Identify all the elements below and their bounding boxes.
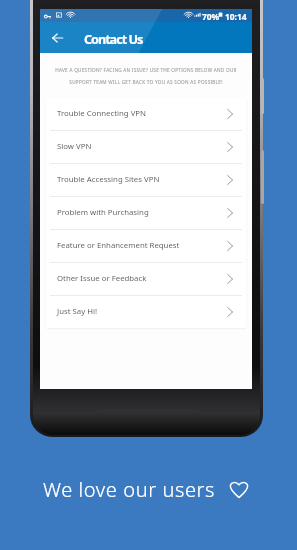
button[interactable]: Slow VPN bbox=[46, 131, 246, 163]
staticText: Contact Us bbox=[84, 31, 143, 48]
button[interactable]: Back bbox=[46, 26, 69, 49]
staticText: 10:14 bbox=[225, 11, 247, 22]
staticText: 70% bbox=[202, 11, 220, 22]
staticText: Trouble Accessing Sites VPN bbox=[57, 174, 160, 185]
button[interactable]: Feature or Enhancement Request bbox=[46, 230, 246, 262]
button[interactable]: Just Say Hi! bbox=[46, 296, 246, 328]
staticText: Just Say Hi! bbox=[57, 306, 98, 317]
button[interactable]: Trouble Accessing Sites VPN bbox=[46, 164, 246, 196]
button[interactable]: Problem with Purchasing bbox=[46, 197, 246, 229]
staticText: HAVE A QUESTION? FACING AN ISSUE? USE TH… bbox=[40, 67, 252, 86]
button[interactable]: Favourite bbox=[230, 481, 248, 498]
staticText: Problem with Purchasing bbox=[57, 207, 149, 218]
button[interactable]: Other Issue or Feedback bbox=[46, 263, 246, 295]
staticText: Slow VPN bbox=[57, 141, 92, 152]
staticText: Other Issue or Feedback bbox=[57, 273, 147, 284]
staticText: We love our users bbox=[43, 476, 215, 503]
staticText: Feature or Enhancement Request bbox=[57, 240, 180, 251]
button[interactable]: Trouble Connecting VPN bbox=[46, 98, 246, 130]
staticText: Trouble Connecting VPN bbox=[57, 108, 146, 119]
